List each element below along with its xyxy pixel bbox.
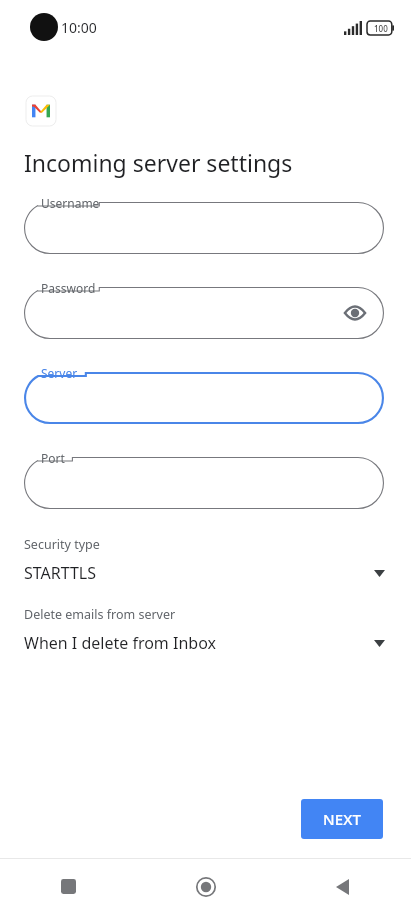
button[interactable]: Recent apps xyxy=(0,859,137,914)
button[interactable]: NEXT xyxy=(301,799,383,839)
button[interactable]: Security type xyxy=(0,536,411,584)
button[interactable]: Server xyxy=(24,372,384,424)
staticText: STARTTLS xyxy=(24,562,374,584)
staticText: Security type xyxy=(24,536,100,553)
staticText: Delete emails from server xyxy=(24,606,176,623)
button[interactable]: Password xyxy=(24,287,384,339)
button[interactable]: Username xyxy=(24,202,384,254)
button[interactable]: Delete emails from server xyxy=(0,606,411,654)
staticText: Password xyxy=(41,280,96,296)
staticText: Username xyxy=(41,195,100,211)
staticText: NEXT xyxy=(323,809,361,829)
button[interactable]: Port xyxy=(24,457,384,509)
button[interactable]: Show password xyxy=(338,296,372,330)
button[interactable]: Home xyxy=(137,859,274,914)
staticText: 10:00 xyxy=(61,18,97,37)
staticText: When I delete from Inbox xyxy=(24,632,374,654)
staticText: Incoming server settings xyxy=(24,147,293,178)
button[interactable]: Back xyxy=(274,859,411,914)
staticText: 100 xyxy=(374,23,388,34)
staticText: Server xyxy=(41,365,78,381)
staticText: Port xyxy=(41,450,65,466)
